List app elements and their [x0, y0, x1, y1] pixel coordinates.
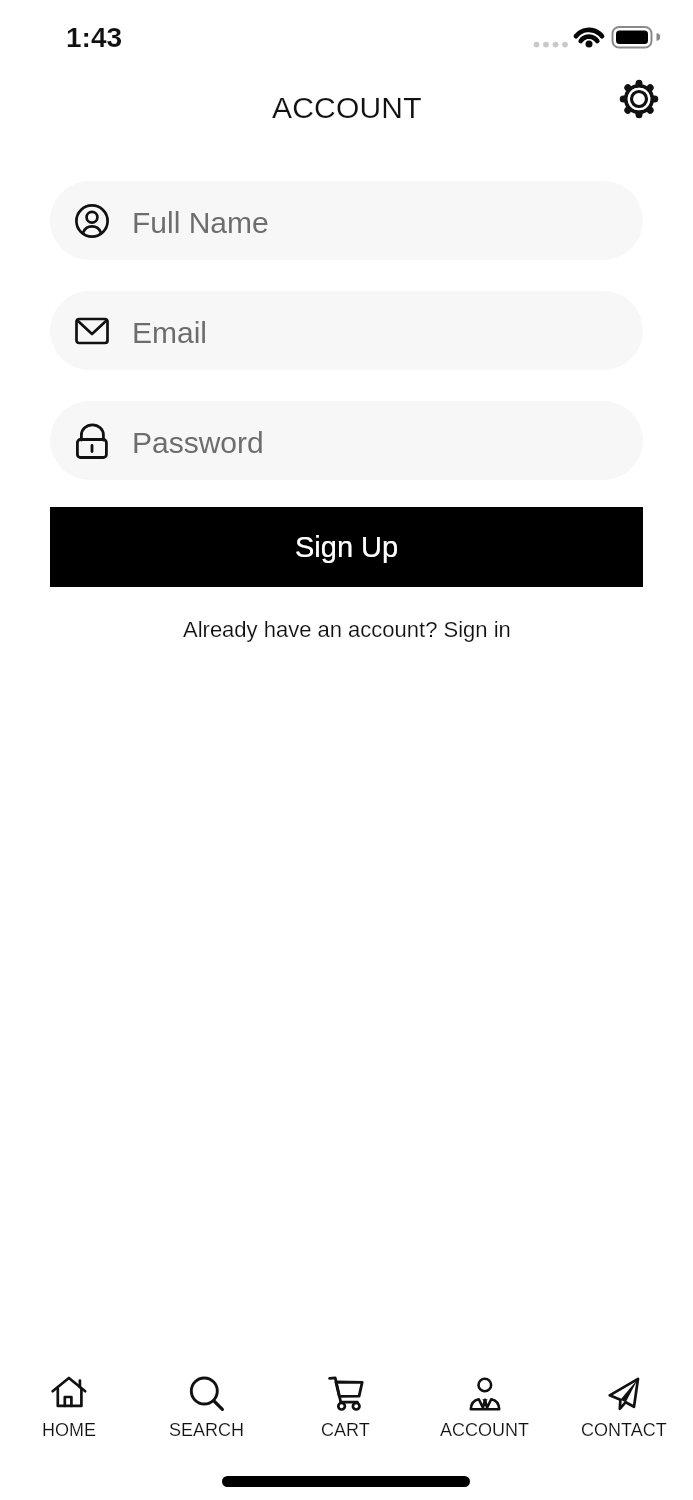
button[interactable]: Email [50, 291, 643, 370]
button[interactable]: Password [50, 401, 643, 480]
staticText: ACCOUNT [440, 1420, 529, 1440]
staticText: SEARCH [169, 1420, 245, 1440]
staticText: Already have an account? Sign in [183, 617, 511, 642]
button[interactable]: Full Name [50, 181, 643, 260]
button[interactable]: ACCOUNT [415, 1372, 554, 1444]
button[interactable]: CONTACT [554, 1372, 693, 1444]
staticText: CART [321, 1420, 370, 1440]
staticText: HOME [42, 1420, 96, 1440]
button[interactable]: Already have an account? Sign in [0, 612, 693, 646]
button[interactable] [613, 73, 665, 125]
staticText: Sign Up [295, 531, 399, 563]
button[interactable]: HOME [0, 1372, 138, 1444]
button[interactable]: CART [276, 1372, 415, 1444]
staticText: ACCOUNT [272, 91, 422, 125]
staticText: Password [132, 426, 264, 460]
staticText: CONTACT [581, 1420, 667, 1440]
button[interactable]: Sign Up [50, 507, 643, 587]
staticText: Email [132, 316, 208, 350]
staticText: 1:43 [66, 22, 123, 53]
staticText: Full Name [132, 206, 269, 240]
button[interactable]: SEARCH [138, 1372, 276, 1444]
